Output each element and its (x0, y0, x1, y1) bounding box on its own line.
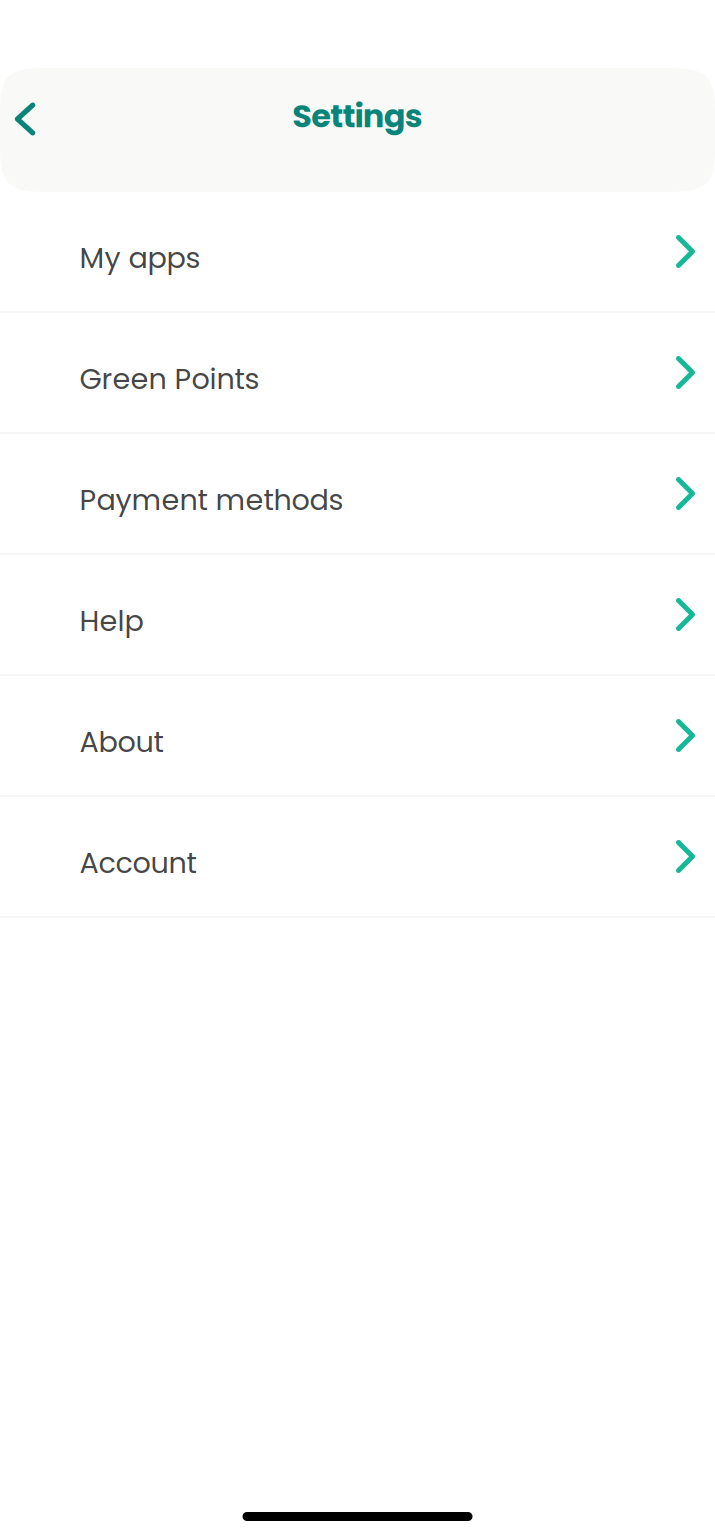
staticText: Account (79, 843, 196, 883)
button[interactable]: My apps (0, 192, 715, 313)
button[interactable]: Account (0, 797, 715, 918)
button[interactable]: Green Points (0, 313, 715, 434)
staticText: Help (79, 601, 143, 641)
button[interactable]: About (0, 676, 715, 797)
staticText: Payment methods (79, 480, 343, 520)
staticText: Green Points (79, 359, 259, 399)
button[interactable]: Payment methods (0, 434, 715, 555)
button[interactable]: Back (0, 72, 70, 160)
button[interactable]: Help (0, 555, 715, 676)
staticText: Settings (292, 94, 423, 138)
staticText: My apps (79, 238, 200, 278)
staticText: About (79, 722, 163, 762)
